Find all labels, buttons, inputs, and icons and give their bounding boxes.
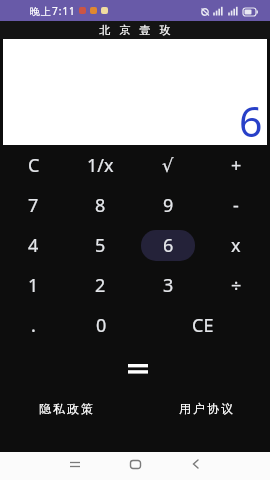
staticText: 6	[163, 233, 174, 258]
staticText: x	[231, 233, 241, 258]
staticText: 8	[95, 193, 106, 218]
button[interactable]	[175, 452, 215, 480]
button[interactable]: √	[134, 145, 202, 185]
staticText: 0	[96, 313, 107, 338]
button[interactable]: 1	[0, 265, 67, 305]
staticText: ÷	[231, 273, 242, 298]
staticText: 4	[28, 233, 39, 258]
staticText: 2	[95, 273, 106, 298]
staticText: 9	[163, 193, 174, 218]
staticText: 用户协议	[178, 401, 234, 416]
button[interactable]: 用户协议	[178, 401, 234, 416]
button[interactable]: x	[202, 225, 270, 265]
button[interactable]: 2	[67, 265, 134, 305]
button[interactable]: 0	[67, 305, 135, 345]
button[interactable]: 5	[67, 225, 134, 265]
button[interactable]: 1/x	[67, 145, 134, 185]
staticText: 北京壹玫	[95, 23, 175, 37]
button[interactable]: -	[202, 185, 270, 225]
button[interactable]: 8	[67, 185, 134, 225]
staticText: .	[31, 313, 36, 338]
button[interactable]: .	[0, 305, 67, 345]
button[interactable]: 7	[0, 185, 67, 225]
staticText: 7	[28, 193, 39, 218]
staticText: √	[162, 155, 174, 176]
staticText: 1/x	[87, 153, 114, 178]
staticText: +	[231, 153, 242, 178]
staticText: CE	[192, 313, 214, 338]
button[interactable]	[55, 452, 95, 480]
staticText: -	[233, 193, 239, 218]
button[interactable]: CE	[135, 305, 270, 345]
button[interactable]: +	[202, 145, 270, 185]
button[interactable]: ÷	[202, 265, 270, 305]
staticText: 3	[163, 273, 174, 298]
button[interactable]: 4	[0, 225, 67, 265]
staticText: 晚上7:11	[30, 4, 76, 18]
button[interactable]: 6	[134, 225, 202, 265]
staticText: 6	[239, 93, 263, 149]
button[interactable]	[115, 452, 155, 480]
button[interactable]: 9	[134, 185, 202, 225]
staticText: 5	[95, 233, 106, 258]
button[interactable]: 隐私政策	[38, 401, 94, 416]
button[interactable]: C	[0, 145, 67, 185]
staticText: C	[28, 153, 40, 178]
staticText: 隐私政策	[38, 401, 94, 416]
button[interactable]	[0, 345, 270, 393]
staticText: 1	[28, 273, 39, 298]
button[interactable]: 3	[134, 265, 202, 305]
